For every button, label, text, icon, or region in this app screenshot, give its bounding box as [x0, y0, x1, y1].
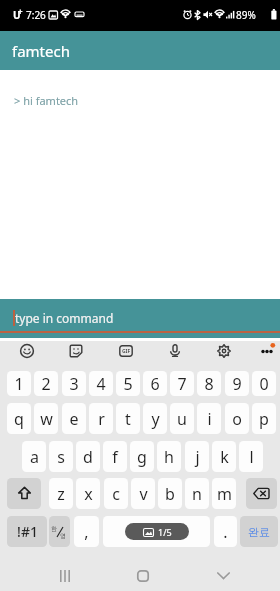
staticText: a [30, 446, 39, 468]
staticText: t [125, 408, 131, 430]
button[interactable]: Korean English toggle [49, 516, 70, 547]
button[interactable]: y [143, 403, 167, 434]
staticText: 1/5 [158, 526, 172, 538]
staticText: !#1 [17, 522, 38, 541]
staticText: w [40, 408, 53, 430]
staticText: > hi famtech [14, 93, 79, 108]
button[interactable]: GIF [114, 339, 138, 363]
staticText: o [232, 408, 242, 430]
button[interactable]: 5 [116, 371, 140, 396]
button[interactable]: 0 [252, 371, 276, 396]
staticText: 2 [41, 373, 51, 395]
staticText: j [195, 446, 200, 468]
button[interactable]: q [7, 403, 31, 434]
button[interactable]: 3 [62, 371, 86, 396]
button[interactable]: Voice input [163, 339, 187, 363]
button[interactable]: s [49, 441, 73, 472]
button[interactable]: 1/5 [103, 516, 210, 547]
staticText: 3 [69, 373, 79, 395]
button[interactable]: 6 [143, 371, 167, 396]
button[interactable]: g [130, 441, 154, 472]
staticText: v [139, 483, 148, 505]
staticText: e [69, 408, 79, 430]
button[interactable]: 4 [89, 371, 113, 396]
button[interactable]: d [76, 441, 100, 472]
staticText: c [112, 483, 120, 505]
staticText: m [217, 483, 232, 505]
button[interactable]: Stickers [64, 339, 88, 363]
staticText: q [14, 408, 24, 430]
button[interactable]: c [104, 478, 128, 509]
button[interactable]: i [197, 403, 221, 434]
button[interactable]: 완료 [240, 516, 278, 547]
staticText: 1 [14, 373, 24, 395]
staticText: famtech [12, 41, 70, 61]
button[interactable]: Recent apps [50, 561, 80, 591]
button[interactable]: v [131, 478, 155, 509]
staticText: 9 [232, 373, 242, 395]
button[interactable]: r [89, 403, 113, 434]
staticText: , [84, 521, 89, 543]
button[interactable]: Emoji [15, 339, 39, 363]
button[interactable]: j [185, 441, 209, 472]
button[interactable]: t [116, 403, 140, 434]
staticText: 89% [236, 8, 256, 22]
staticText: i [207, 408, 212, 430]
button[interactable]: h [157, 441, 181, 472]
button[interactable]: 9 [225, 371, 249, 396]
staticText: z [57, 483, 65, 505]
button[interactable]: x [76, 478, 100, 509]
staticText: s [57, 446, 65, 468]
button[interactable]: w [34, 403, 58, 434]
button[interactable]: 1 [7, 371, 31, 396]
staticText: 5 [123, 373, 133, 395]
button[interactable]: 7 [170, 371, 194, 396]
staticText: l [249, 446, 254, 468]
button[interactable]: Hide keyboard [208, 561, 238, 591]
staticText: type in command [15, 310, 114, 326]
staticText: f [112, 446, 118, 468]
button[interactable]: Shift [7, 478, 41, 509]
button[interactable]: type in command [0, 299, 280, 338]
staticText: GIF [122, 348, 131, 355]
staticText: 8 [204, 373, 214, 395]
staticText: n [192, 483, 202, 505]
staticText: U [13, 8, 21, 22]
button[interactable]: a [22, 441, 46, 472]
button[interactable]: , [74, 516, 99, 547]
button[interactable]: e [62, 403, 86, 434]
staticText: d [83, 446, 93, 468]
button[interactable]: Backspace [246, 478, 277, 509]
staticText: k [220, 446, 229, 468]
button[interactable]: o [225, 403, 249, 434]
button[interactable]: !#1 [7, 516, 47, 547]
button[interactable]: b [158, 478, 182, 509]
staticText: h [164, 446, 174, 468]
button[interactable]: n [185, 478, 209, 509]
button[interactable]: p [252, 403, 276, 434]
staticText: 완료 [248, 525, 270, 539]
staticText: 0 [259, 373, 269, 395]
staticText: 4 [96, 373, 106, 395]
button[interactable]: u [170, 403, 194, 434]
button[interactable]: l [239, 441, 263, 472]
staticText: y [151, 408, 160, 430]
staticText: 6 [150, 373, 160, 395]
staticText: b [165, 483, 175, 505]
button[interactable]: m [212, 478, 236, 509]
button[interactable]: k [212, 441, 236, 472]
staticText: 영 [60, 532, 66, 540]
button[interactable]: Home [128, 561, 158, 591]
button[interactable]: f [103, 441, 127, 472]
button[interactable]: Settings [212, 339, 236, 363]
button[interactable]: More options [255, 339, 279, 363]
staticText: . [223, 521, 228, 543]
staticText: 한 [51, 525, 57, 533]
button[interactable]: 2 [34, 371, 58, 396]
staticText: p [259, 408, 269, 430]
button[interactable]: 8 [197, 371, 221, 396]
button[interactable]: z [49, 478, 73, 509]
staticText: + [18, 6, 23, 17]
button[interactable]: . [214, 516, 237, 547]
staticText: x [84, 483, 93, 505]
